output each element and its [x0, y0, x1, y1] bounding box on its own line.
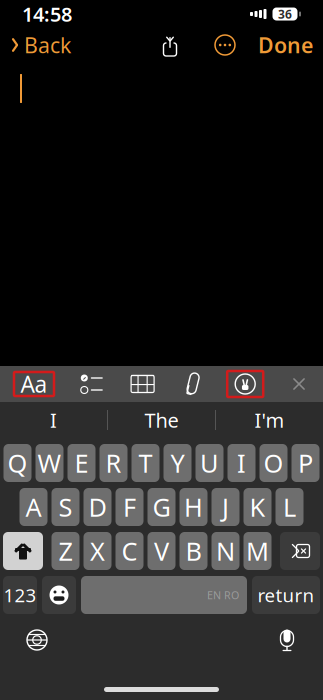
button[interactable]: C	[115, 532, 143, 570]
button[interactable]: 123	[3, 576, 37, 614]
button[interactable]: Table	[130, 373, 156, 395]
button[interactable]: Attach	[181, 372, 201, 396]
button[interactable]: Dictate	[269, 620, 305, 660]
staticText: D	[88, 490, 106, 524]
staticText: Back	[24, 31, 71, 59]
button[interactable]: R	[99, 444, 127, 482]
button[interactable]: More	[210, 30, 240, 60]
staticText: 14:58	[22, 1, 72, 27]
button[interactable]: H	[179, 488, 207, 526]
staticText: E	[74, 446, 88, 480]
staticText: 36	[278, 6, 292, 22]
staticText: H	[184, 490, 203, 524]
staticText: U	[200, 446, 219, 480]
staticText: Aa	[20, 369, 47, 399]
button[interactable]: G	[147, 488, 175, 526]
button[interactable]: E	[67, 444, 95, 482]
staticText: M	[246, 534, 269, 568]
button[interactable]: Share	[154, 30, 186, 60]
button[interactable]: N	[211, 532, 239, 570]
button[interactable]: Checklist	[80, 373, 104, 395]
staticText: Y	[170, 446, 184, 480]
staticText: G	[152, 490, 170, 524]
button[interactable]: The	[108, 402, 215, 438]
staticText: J	[222, 490, 229, 524]
staticText: X	[90, 534, 105, 568]
staticText: F	[123, 490, 136, 524]
staticText: W	[37, 446, 61, 480]
button[interactable]: T	[131, 444, 159, 482]
button[interactable]: A	[19, 488, 47, 526]
staticText: The	[144, 407, 178, 433]
button[interactable]: I	[227, 444, 255, 482]
button[interactable]: W	[35, 444, 63, 482]
button[interactable]: Y	[163, 444, 191, 482]
staticText: Done	[258, 31, 313, 59]
staticText: R	[105, 446, 121, 480]
button[interactable]: I'm	[216, 402, 323, 438]
button[interactable]: B	[179, 532, 207, 570]
staticText: T	[138, 446, 152, 480]
staticText: S	[58, 490, 72, 524]
button[interactable]: return	[252, 576, 320, 614]
staticText: A	[25, 490, 41, 524]
staticText: Z	[58, 534, 72, 568]
button[interactable]: O	[259, 444, 287, 482]
button[interactable]: M	[243, 532, 271, 570]
staticText: P	[298, 446, 313, 480]
button[interactable]: Q	[3, 444, 31, 482]
button[interactable]: Done	[258, 25, 313, 65]
staticText: return	[257, 583, 314, 607]
button[interactable]: F	[115, 488, 143, 526]
button[interactable]: Emoji	[42, 576, 76, 614]
staticText: L	[283, 490, 296, 524]
staticText: 123	[3, 583, 36, 607]
staticText: I'm	[254, 407, 284, 433]
button[interactable]: Z	[51, 532, 79, 570]
staticText: Q	[7, 446, 27, 480]
button[interactable]: L	[275, 488, 303, 526]
button[interactable]: Text format	[14, 372, 54, 396]
staticText: I	[237, 446, 246, 480]
staticText: B	[185, 534, 201, 568]
button[interactable]: D	[83, 488, 111, 526]
staticText: C	[121, 534, 137, 568]
button[interactable]: V	[147, 532, 175, 570]
button[interactable]: J	[211, 488, 239, 526]
staticText: I	[50, 407, 57, 433]
button[interactable]: Back	[10, 25, 71, 65]
button[interactable]: P	[291, 444, 319, 482]
button[interactable]: I	[0, 402, 107, 438]
button[interactable]: Shift	[3, 532, 43, 570]
button[interactable]: S	[51, 488, 79, 526]
button[interactable]: Close toolbar	[289, 374, 309, 394]
button[interactable]: Markup	[227, 371, 263, 397]
button[interactable]: Delete	[280, 532, 320, 570]
button[interactable]: K	[243, 488, 271, 526]
button[interactable]: U	[195, 444, 223, 482]
button[interactable]: Space	[81, 576, 247, 614]
staticText: O	[263, 446, 283, 480]
button[interactable]: Switch keyboard	[18, 621, 56, 659]
staticText: EN RO	[207, 588, 239, 602]
button[interactable]: X	[83, 532, 111, 570]
staticText: N	[216, 534, 235, 568]
staticText: K	[249, 490, 265, 524]
staticText: V	[154, 534, 169, 568]
